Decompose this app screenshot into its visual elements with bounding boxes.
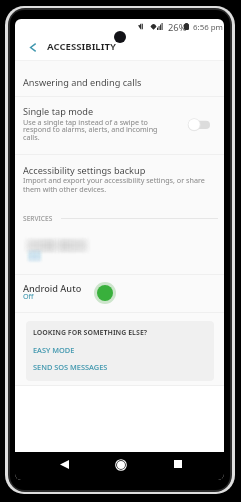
- staticText: Use a single tap instead of a swipe to r…: [23, 117, 170, 142]
- staticText: 26%: [168, 21, 187, 34]
- button[interactable]: Home: [110, 454, 131, 475]
- button[interactable]: SEND SOS MESSAGES: [33, 362, 108, 372]
- staticText: Accessibility settings backup: [23, 164, 146, 177]
- button[interactable]: Single tap mode: [15, 97, 224, 154]
- button[interactable]: EASY MODE: [33, 345, 75, 355]
- staticText: Answering and ending calls: [23, 76, 142, 89]
- button[interactable]: Recent apps: [168, 454, 188, 474]
- staticText: LOOKING FOR SOMETHING ELSE?: [33, 328, 148, 338]
- staticText: Single tap mode: [23, 105, 94, 118]
- button[interactable]: Navigate up: [23, 37, 42, 57]
- staticText: Off: [23, 291, 34, 301]
- staticText: Import and export your accessibility set…: [23, 175, 205, 194]
- button[interactable]: [15, 225, 224, 273]
- staticText: 6:56 pm: [193, 22, 223, 33]
- button[interactable]: Back: [54, 454, 74, 474]
- staticText: ACCESSIBILITY: [47, 40, 116, 53]
- staticText: SERVICES: [23, 214, 53, 223]
- button[interactable]: Android Auto: [15, 274, 224, 312]
- staticText: Android Auto: [23, 282, 82, 295]
- button[interactable]: Accessibility settings backup: [15, 155, 224, 210]
